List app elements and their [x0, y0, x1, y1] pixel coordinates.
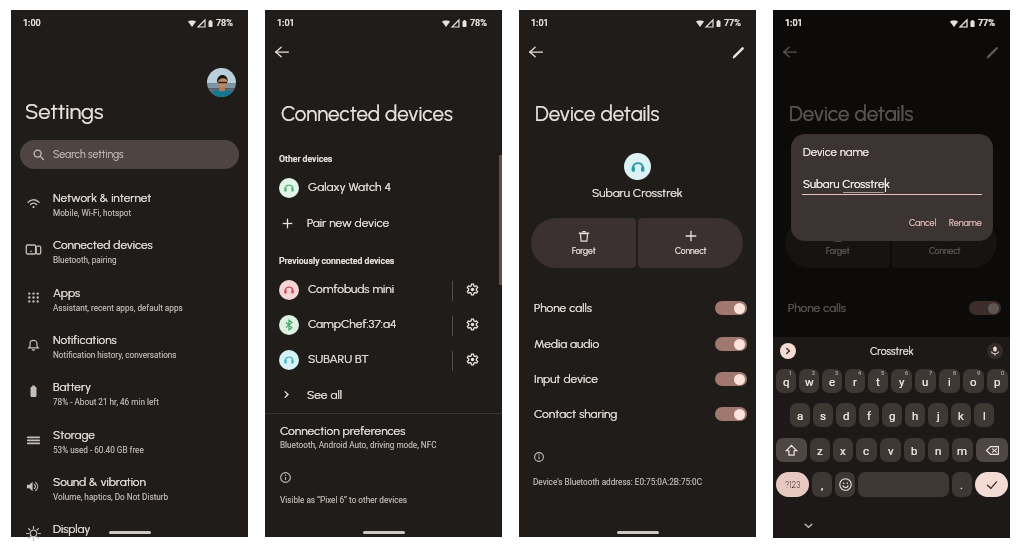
button[interactable]: c — [856, 438, 877, 462]
staticText: 6 — [905, 370, 909, 376]
button[interactable]: z — [810, 438, 830, 462]
button[interactable]: Pair new device — [265, 206, 502, 241]
button[interactable]: Voice input — [987, 343, 1003, 359]
button[interactable]: j — [928, 403, 948, 427]
button[interactable]: Back — [777, 39, 803, 65]
button[interactable]: SUBARU BT — [265, 342, 502, 377]
button[interactable]: Back — [523, 39, 549, 65]
staticText: 7 — [929, 370, 933, 376]
staticText: i — [948, 375, 951, 388]
staticText: p — [994, 375, 1001, 388]
button[interactable]: Battery — [11, 374, 248, 421]
button[interactable]: g — [882, 403, 902, 427]
button[interactable]: Emoji — [835, 472, 855, 497]
button[interactable]: Phone calls — [519, 290, 756, 323]
staticText: 53% used - 60.40 GB free — [53, 445, 144, 455]
button[interactable]: Phone calls — [773, 290, 1010, 323]
button[interactable]: , — [812, 472, 832, 497]
button[interactable]: Network & internet — [11, 185, 248, 232]
button[interactable]: Media audio — [519, 326, 756, 359]
button[interactable]: q — [776, 369, 796, 393]
button[interactable]: Media audio — [773, 326, 1010, 359]
button[interactable]: Done — [975, 472, 1008, 497]
button[interactable]: t — [868, 369, 888, 393]
button[interactable]: e — [822, 369, 842, 393]
button[interactable]: Forget — [785, 218, 890, 268]
button[interactable]: n — [928, 438, 949, 462]
button[interactable]: Contact sharing — [519, 396, 756, 429]
button[interactable]: o — [963, 369, 984, 393]
button[interactable]: Storage — [11, 422, 248, 469]
staticText: 8 — [953, 370, 957, 376]
button[interactable]: m — [952, 438, 973, 462]
staticText: o — [970, 375, 977, 388]
button[interactable]: f — [859, 403, 879, 427]
staticText: w — [805, 375, 814, 388]
button[interactable]: Back — [269, 39, 295, 65]
button[interactable]: Edit name — [725, 39, 751, 65]
staticText: v — [888, 444, 894, 457]
button[interactable]: Hide keyboard — [801, 518, 815, 532]
button[interactable]: Galaxy Watch 4 — [265, 170, 502, 205]
button[interactable]: ?123 — [776, 472, 809, 497]
staticText: 5 — [881, 370, 885, 376]
staticText: Rename — [949, 217, 982, 228]
button[interactable]: s — [813, 403, 833, 427]
button[interactable]: Device settings — [457, 307, 487, 342]
button[interactable]: Connection preferences — [265, 420, 502, 458]
button[interactable]: Device settings — [457, 342, 487, 377]
button[interactable]: Edit name — [979, 39, 1005, 65]
button[interactable]: Expand toolbar — [780, 343, 796, 359]
button[interactable]: Connect — [638, 218, 743, 268]
button[interactable]: r — [845, 369, 865, 393]
button[interactable]: Account — [207, 68, 236, 97]
button[interactable]: CampChef:37:a4 — [265, 307, 502, 342]
button[interactable]: Space — [858, 472, 949, 497]
staticText: , — [821, 478, 824, 491]
button[interactable]: Connect — [892, 218, 997, 268]
button[interactable]: Notifications — [11, 327, 248, 374]
button[interactable]: Comfobuds mini — [265, 272, 502, 307]
button[interactable]: Rename — [946, 213, 984, 231]
button[interactable]: l — [974, 403, 994, 427]
button[interactable]: Device settings — [457, 272, 487, 307]
button[interactable]: Backspace — [976, 438, 1008, 462]
staticText: Search settings — [53, 148, 124, 161]
staticText: 4 — [858, 370, 862, 376]
button[interactable]: Apps — [11, 280, 248, 327]
staticText: 1:00 — [23, 18, 41, 29]
button[interactable]: Input device — [519, 361, 756, 394]
button[interactable]: Sound & vibration — [11, 469, 248, 516]
button[interactable]: Cancel — [906, 213, 940, 231]
button[interactable]: See all — [265, 378, 502, 412]
button[interactable]: b — [904, 438, 925, 462]
button[interactable]: . — [952, 472, 972, 497]
button[interactable]: Input device — [773, 361, 1010, 394]
staticText: ?123 — [785, 480, 801, 490]
button[interactable]: w — [799, 369, 819, 393]
staticText: Device's Bluetooth address: E0:75:0A:2B:… — [787, 477, 957, 487]
button[interactable]: k — [951, 403, 971, 427]
button[interactable]: i — [939, 369, 960, 393]
button[interactable]: h — [905, 403, 925, 427]
staticText: Device details — [535, 102, 660, 127]
button[interactable]: Shift — [776, 438, 807, 462]
staticText: Assistant, recent apps, default apps — [53, 303, 183, 313]
button[interactable]: Display — [11, 516, 248, 546]
staticText: x — [840, 444, 846, 457]
button[interactable]: Forget — [531, 218, 636, 268]
button[interactable]: d — [836, 403, 856, 427]
button[interactable]: x — [833, 438, 853, 462]
button[interactable]: Connected devices — [11, 232, 248, 279]
button[interactable]: Contact sharing — [773, 396, 1010, 429]
button[interactable]: p — [987, 369, 1008, 393]
button[interactable]: a — [790, 403, 810, 427]
button[interactable]: u — [915, 369, 936, 393]
staticText: 0 — [1001, 370, 1005, 376]
button[interactable]: v — [880, 438, 901, 462]
staticText: 1:01 — [785, 18, 803, 29]
button[interactable]: y — [891, 369, 912, 393]
button[interactable]: Search settings — [20, 140, 239, 169]
staticText: Connect — [675, 246, 707, 256]
staticText: 77% — [978, 18, 995, 29]
